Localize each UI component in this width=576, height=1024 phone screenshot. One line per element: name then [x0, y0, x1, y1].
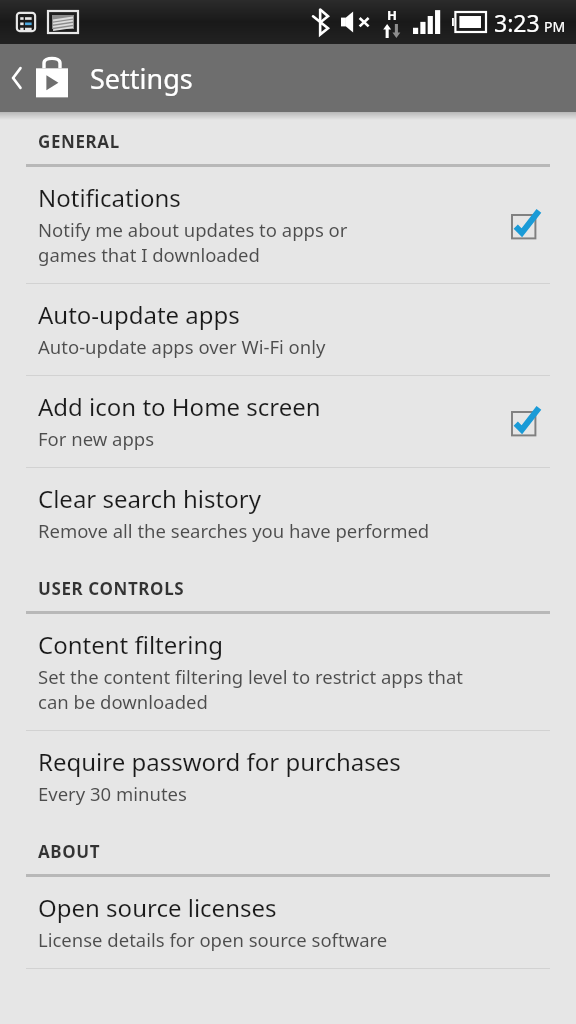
staticText: Auto-update apps [38, 298, 240, 331]
staticText: Set the content filtering level to restr… [38, 664, 463, 714]
staticText: USER CONTROLS [38, 577, 185, 600]
staticText: Clear search history [38, 482, 261, 515]
staticText: H [387, 6, 397, 24]
button[interactable]: Open source licenses [0, 877, 576, 968]
staticText: License details for open source software [38, 927, 388, 952]
staticText: Every 30 minutes [38, 781, 187, 806]
staticText: For new apps [38, 426, 155, 451]
staticText: PM [544, 17, 566, 36]
button[interactable]: Auto-update apps [0, 284, 576, 375]
staticText: ABOUT [38, 840, 101, 863]
button[interactable]: Add icon to Home screen [0, 376, 576, 467]
staticText: Open source licenses [38, 891, 277, 924]
staticText: GENERAL [38, 130, 120, 153]
staticText: Auto-update apps over Wi-Fi only [38, 334, 326, 359]
staticText: Add icon to Home screen [38, 390, 321, 423]
staticText: Settings [90, 60, 193, 97]
staticText: Require password for purchases [38, 745, 401, 778]
button[interactable]: Clear search history [0, 468, 576, 559]
button[interactable]: Content filtering [0, 614, 576, 730]
button[interactable]: Navigate up [0, 48, 78, 108]
staticText: Content filtering [38, 628, 223, 661]
staticText: Remove all the searches you have perform… [38, 518, 430, 543]
button[interactable]: Notifications checkbox [502, 199, 552, 249]
button[interactable]: Require password for purchases [0, 731, 576, 822]
staticText: Notify me about updates to apps or games… [38, 217, 348, 267]
button[interactable]: Notifications [0, 167, 576, 283]
button[interactable]: Add icon to Home screen checkbox [502, 396, 552, 446]
staticText: 3:23 [494, 7, 540, 38]
staticText: Notifications [38, 181, 181, 214]
